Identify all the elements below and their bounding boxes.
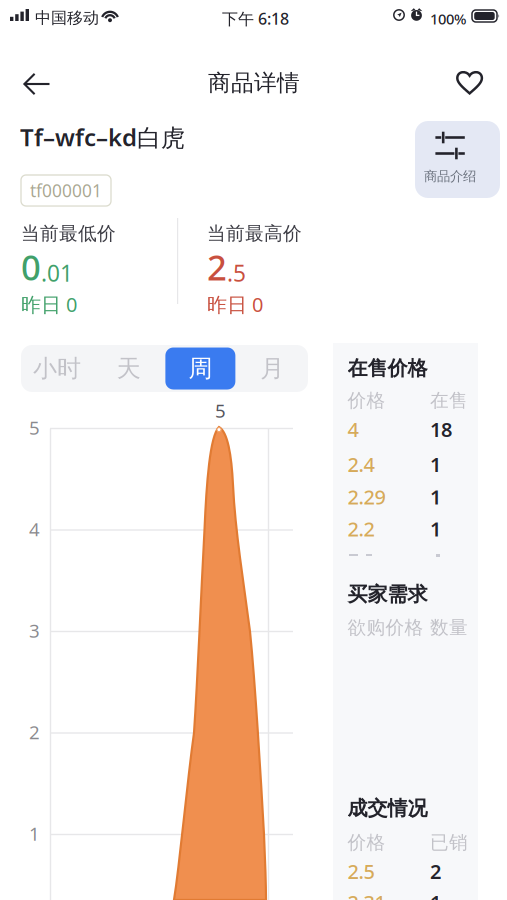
- staticText: 1: [430, 889, 441, 900]
- staticText: 买家需求: [347, 582, 427, 607]
- staticText: 1: [430, 515, 441, 542]
- staticText: 已销: [430, 831, 468, 854]
- staticText: 当前最低价: [21, 222, 116, 245]
- staticText: .5: [227, 258, 246, 288]
- staticText: 在售价格: [347, 356, 427, 381]
- staticText: 下午 6:18: [222, 8, 289, 29]
- staticText: 欲购价格: [347, 616, 423, 639]
- staticText: 当前最高价: [207, 222, 302, 245]
- staticText: 1: [29, 821, 40, 846]
- staticText: 100%: [430, 9, 466, 28]
- button[interactable]: 月: [236, 345, 308, 392]
- staticText: 18: [430, 416, 452, 443]
- staticText: 数量: [430, 616, 468, 639]
- staticText: 月: [260, 354, 284, 383]
- button[interactable]: 小时: [21, 345, 93, 392]
- staticText: 2: [430, 858, 441, 885]
- staticText: 在售: [430, 389, 468, 412]
- staticText: 天: [117, 354, 141, 383]
- button[interactable]: 天: [93, 345, 165, 392]
- staticText: 价格: [347, 389, 385, 412]
- staticText: 1: [430, 483, 441, 510]
- staticText: 4: [29, 516, 40, 541]
- staticText: 2.5: [347, 858, 374, 885]
- staticText: 商品详情: [208, 69, 300, 97]
- staticText: 商品介绍: [424, 168, 476, 184]
- staticText: 2: [207, 244, 227, 290]
- staticText: 0: [21, 244, 41, 290]
- staticText: 3: [29, 618, 40, 643]
- button[interactable]: 商品介绍: [415, 121, 500, 198]
- staticText: 2.2: [347, 515, 374, 542]
- staticText: 2.4: [347, 451, 374, 478]
- button[interactable]: 返回: [0, 53, 507, 115]
- staticText: 中国移动: [35, 8, 99, 28]
- staticText: 1: [430, 451, 441, 478]
- staticText: 2: [29, 719, 40, 744]
- staticText: .01: [41, 258, 73, 288]
- staticText: 2.29: [347, 483, 385, 510]
- staticText: 5: [29, 415, 40, 440]
- staticText: 价格: [347, 831, 385, 854]
- staticText: 昨日 0: [207, 291, 263, 318]
- staticText: 5: [215, 398, 226, 423]
- staticText: 周: [188, 354, 212, 383]
- button[interactable]: 周: [164, 345, 236, 392]
- button[interactable]: 收藏: [0, 53, 507, 115]
- staticText: 4: [347, 416, 358, 443]
- staticText: 小时: [33, 354, 81, 383]
- staticText: 成交情况: [347, 796, 427, 821]
- staticText: 昨日 0: [21, 291, 77, 318]
- staticText: Tf–wfc–kd白虎: [20, 121, 185, 153]
- staticText: 2.31: [347, 889, 385, 900]
- staticText: tf000001: [30, 179, 102, 202]
